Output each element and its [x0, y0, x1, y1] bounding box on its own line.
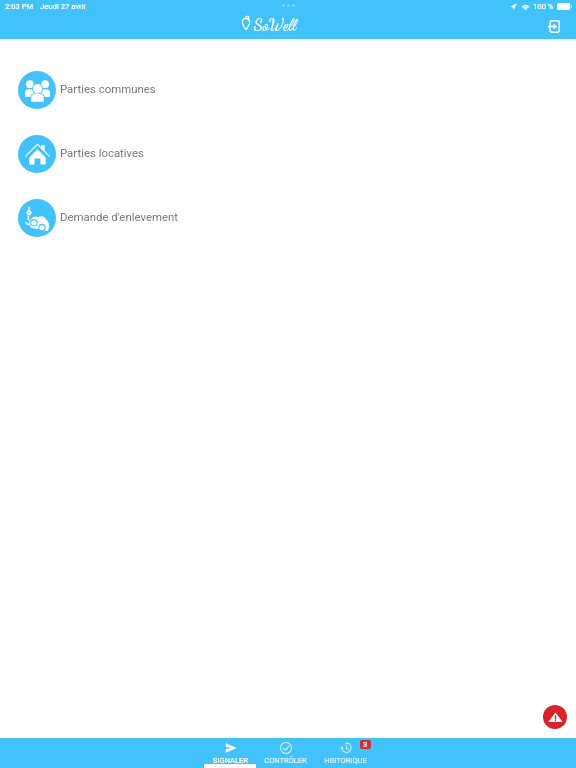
- staticText: HISTORIQUE: [324, 756, 367, 765]
- staticText: Jeudi 27 avril: [40, 2, 86, 11]
- staticText: 100 %: [533, 2, 554, 11]
- button[interactable]: Parties communes: [0, 58, 576, 122]
- button[interactable]: Demande d'enlevement: [0, 186, 576, 250]
- button[interactable]: SIGNALER: [204, 738, 256, 768]
- button[interactable]: HISTORIQUE: [315, 738, 375, 768]
- staticText: SoWell: [254, 15, 297, 35]
- button[interactable]: Se deconnecter: [541, 14, 565, 38]
- staticText: 2:03 PM: [5, 2, 34, 11]
- button[interactable]: Signaler une alerte: [543, 705, 567, 729]
- staticText: CONTRÔLER: [264, 756, 307, 765]
- button[interactable]: CONTRÔLER: [256, 738, 314, 768]
- staticText: Demande d'enlevement: [60, 210, 178, 223]
- staticText: 3: [363, 740, 368, 749]
- staticText: SIGNALER: [213, 756, 248, 765]
- staticText: Parties communes: [60, 82, 156, 95]
- staticText: Parties locatives: [60, 146, 144, 159]
- button[interactable]: Parties locatives: [0, 122, 576, 186]
